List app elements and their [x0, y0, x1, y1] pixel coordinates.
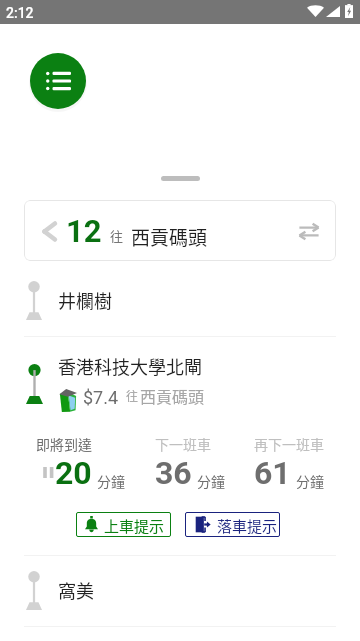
- staticText: 西貢碼頭: [140, 384, 205, 407]
- staticText: 36: [155, 454, 192, 492]
- staticText: 下一班車: [155, 434, 211, 454]
- staticText: 香港科技大學北閘: [58, 353, 202, 379]
- staticText: 2:12: [6, 5, 34, 21]
- button[interactable]: 窩美: [0, 559, 360, 626]
- button[interactable]: Route list: [30, 53, 86, 109]
- staticText: 12: [66, 213, 102, 249]
- button[interactable]: 落車提示: [185, 512, 280, 537]
- staticText: 即將到達: [36, 434, 92, 454]
- button[interactable]: 香港科技大學北閘: [0, 337, 360, 555]
- staticText: 分鐘: [97, 471, 125, 491]
- staticText: 再下一班車: [254, 434, 324, 454]
- staticText: 窩美: [58, 577, 94, 603]
- staticText: 分鐘: [197, 471, 225, 491]
- staticText: 上車提示: [104, 515, 165, 537]
- staticText: 西貢碼頭: [131, 223, 208, 251]
- staticText: 20: [55, 454, 92, 492]
- staticText: $7.4: [83, 387, 119, 408]
- staticText: 往: [126, 387, 139, 404]
- button[interactable]: 上車提示: [76, 512, 171, 537]
- button[interactable]: 井欄樹: [0, 269, 360, 336]
- staticText: 落車提示: [217, 515, 278, 537]
- button[interactable]: 12: [24, 200, 336, 261]
- staticText: 分鐘: [296, 471, 324, 491]
- staticText: 61: [254, 454, 291, 492]
- staticText: 井欄樹: [58, 287, 112, 313]
- staticText: 往: [110, 226, 124, 245]
